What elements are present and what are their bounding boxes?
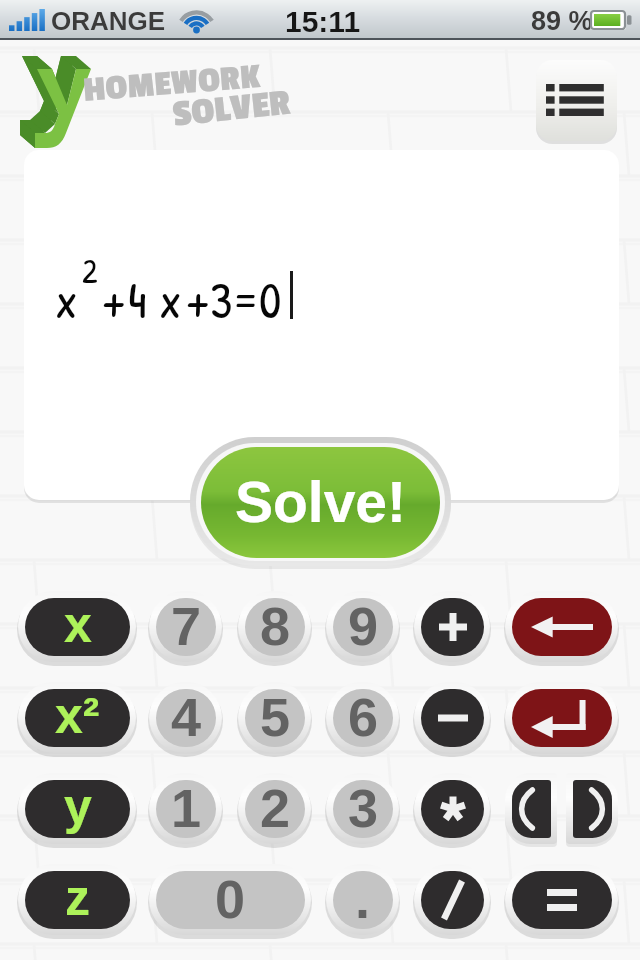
- button[interactable]: 3: [326, 773, 399, 844]
- staticText: 89 %: [531, 6, 593, 36]
- staticText: 4: [171, 689, 202, 745]
- button[interactable]: times: [414, 773, 490, 844]
- button[interactable]: 2: [238, 773, 311, 844]
- staticText: x: [159, 266, 182, 334]
- staticText: x: [55, 266, 78, 334]
- button[interactable]: 4: [149, 682, 222, 753]
- button[interactable]: close parenthesis: [566, 773, 618, 844]
- button[interactable]: Backspace: [505, 591, 618, 662]
- staticText: 6: [348, 689, 379, 745]
- staticText: 4: [128, 266, 147, 334]
- button[interactable]: open parenthesis: [505, 773, 557, 844]
- button[interactable]: 7: [149, 591, 222, 662]
- staticText: 3: [348, 780, 379, 836]
- staticText: HOMEWORK: [82, 57, 262, 111]
- staticText: 0: [259, 266, 282, 334]
- staticText: z: [65, 871, 90, 926]
- button[interactable]: divide: [414, 864, 490, 935]
- button[interactable]: minus: [414, 682, 490, 753]
- button[interactable]: x²: [18, 682, 136, 753]
- staticText: .: [355, 871, 371, 927]
- button[interactable]: 0: [149, 864, 311, 935]
- staticText: 0: [215, 871, 246, 927]
- staticText: =: [231, 266, 260, 334]
- button[interactable]: Solve!: [190, 437, 451, 566]
- button[interactable]: y: [18, 773, 136, 844]
- button[interactable]: x: [18, 591, 136, 662]
- staticText: 2: [82, 249, 98, 294]
- staticText: 1: [171, 780, 202, 836]
- staticText: 2: [260, 780, 291, 836]
- button[interactable]: Menu: [536, 60, 617, 141]
- button[interactable]: 5: [238, 682, 311, 753]
- button[interactable]: 9: [326, 591, 399, 662]
- staticText: 9: [348, 598, 379, 654]
- staticText: ORANGE: [51, 6, 166, 35]
- staticText: x²: [55, 689, 100, 744]
- staticText: y: [64, 780, 92, 835]
- staticText: +: [102, 266, 126, 334]
- button[interactable]: 6: [326, 682, 399, 753]
- button[interactable]: 8: [238, 591, 311, 662]
- button[interactable]: z: [18, 864, 136, 935]
- button[interactable]: .: [326, 864, 399, 935]
- staticText: 5: [260, 689, 291, 745]
- staticText: 15:11: [285, 5, 361, 39]
- staticText: SOLVER: [171, 82, 293, 136]
- button[interactable]: Enter: [505, 682, 618, 753]
- staticText: x: [64, 598, 92, 653]
- staticText: 3: [210, 266, 233, 334]
- button[interactable]: 1: [149, 773, 222, 844]
- staticText: +: [186, 266, 210, 334]
- button[interactable]: x: [24, 150, 619, 500]
- staticText: 8: [260, 598, 291, 654]
- staticText: Solve!: [235, 470, 407, 534]
- staticText: 7: [171, 598, 202, 654]
- button[interactable]: equals: [505, 864, 618, 935]
- button[interactable]: plus: [414, 591, 490, 662]
